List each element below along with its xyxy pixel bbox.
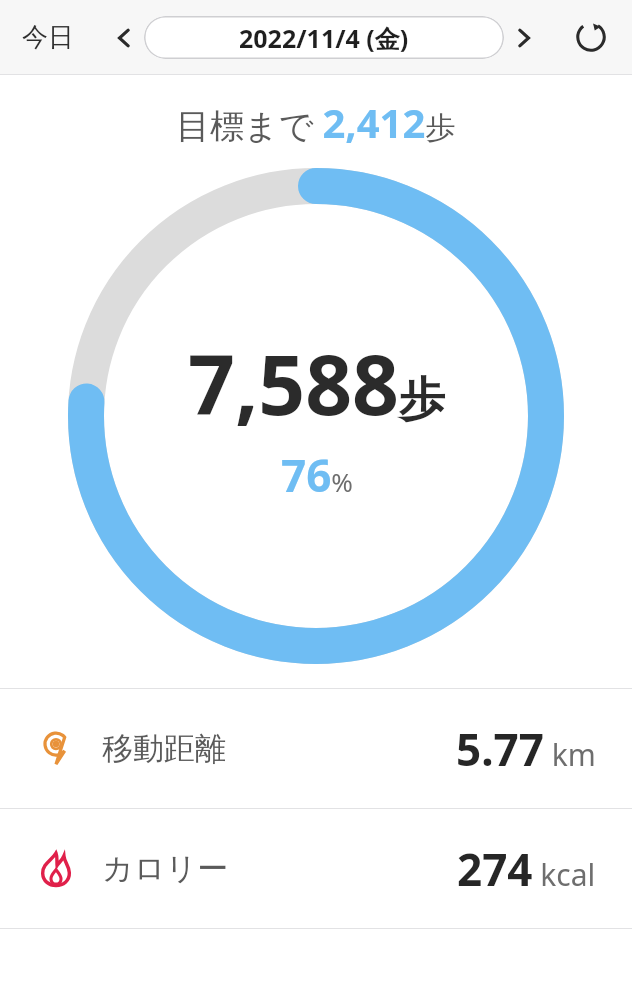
staticText: 目標まで 2,412歩 — [176, 95, 456, 149]
staticText: 7,588歩 — [188, 327, 445, 439]
button[interactable]: Refresh — [568, 14, 614, 60]
button[interactable]: カロリー — [0, 809, 632, 928]
staticText: 今日 — [22, 21, 74, 54]
button[interactable]: Next day — [504, 18, 544, 58]
button[interactable]: 今日 — [14, 13, 82, 62]
staticText: カロリー — [102, 849, 229, 888]
staticText: 274 kcal — [457, 839, 596, 899]
staticText: 2022/11/4 (金) — [239, 21, 409, 55]
staticText: 76% — [281, 445, 353, 505]
staticText: 5.77 km — [456, 719, 596, 779]
button[interactable]: 2022/11/4 (金) — [144, 16, 504, 59]
button[interactable]: Previous day — [104, 18, 144, 58]
button[interactable]: 移動距離 — [0, 689, 632, 808]
staticText: 移動距離 — [102, 729, 226, 768]
